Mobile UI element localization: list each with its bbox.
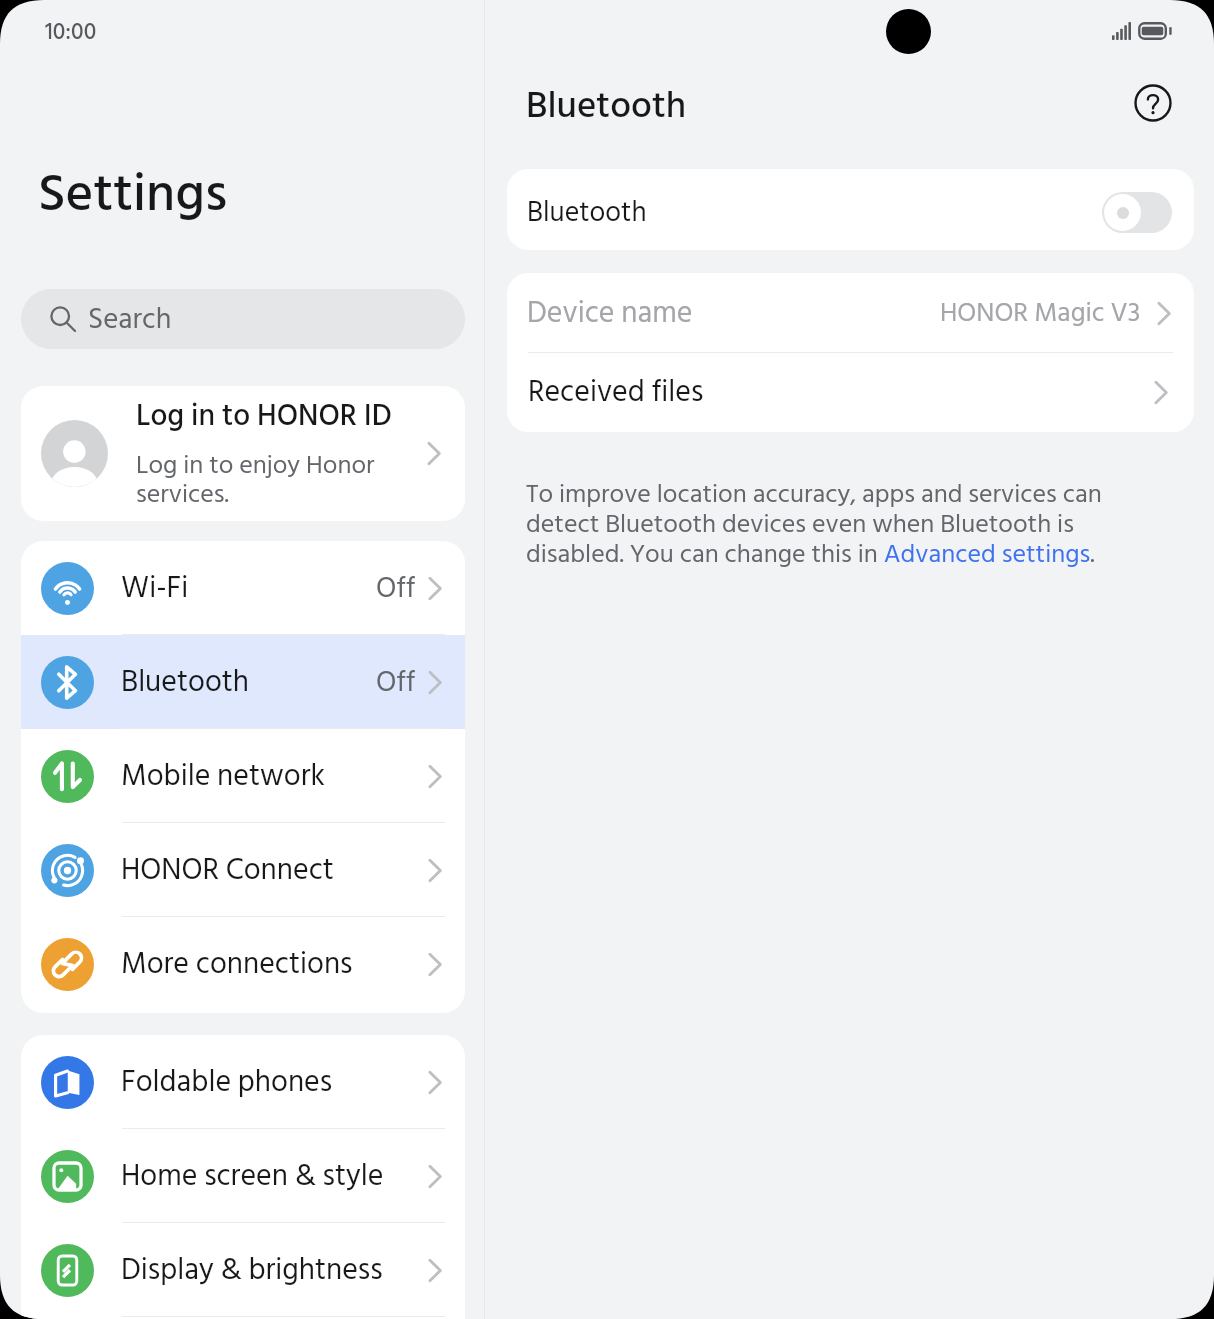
staticText: Display & brightness — [121, 1246, 423, 1295]
button[interactable]: HONOR Connect — [21, 823, 465, 917]
staticText: Wi-Fi — [121, 564, 376, 613]
staticText: To improve location accuracy, apps and s… — [526, 473, 1116, 575]
button[interactable]: Received files — [507, 353, 1194, 432]
staticText: Bluetooth — [526, 76, 687, 136]
button[interactable]: More connections — [21, 917, 465, 1011]
staticText: Bluetooth — [121, 658, 376, 707]
staticText: Off — [376, 565, 416, 612]
button[interactable]: Home screen & style — [21, 1129, 465, 1223]
staticText: Mobile network — [121, 752, 423, 801]
staticText: HONOR Connect — [121, 846, 423, 895]
button[interactable]: Help — [1125, 75, 1180, 130]
button[interactable]: Search — [21, 289, 465, 349]
button[interactable]: Display & brightness — [21, 1223, 465, 1317]
staticText: Log in to enjoy Honor services. — [136, 444, 416, 515]
button[interactable]: Device name — [507, 273, 1194, 353]
staticText: Device name — [527, 289, 940, 338]
staticText: Search — [88, 296, 172, 343]
staticText: 10:00 — [45, 13, 97, 50]
staticText: Foldable phones — [121, 1058, 423, 1107]
staticText: More connections — [121, 940, 423, 989]
staticText: Bluetooth — [527, 190, 1102, 235]
button[interactable]: Log in to HONOR ID — [21, 386, 465, 521]
staticText: Received files — [528, 368, 1149, 417]
staticText: HONOR Magic V3 — [940, 291, 1141, 335]
button[interactable]: Foldable phones — [21, 1035, 465, 1129]
staticText: Home screen & style — [121, 1152, 423, 1201]
button[interactable]: Bluetooth — [21, 635, 465, 729]
staticText: Log in to HONOR ID — [136, 392, 392, 441]
staticText: Off — [376, 659, 416, 706]
staticText: Settings — [38, 151, 228, 237]
button[interactable]: Wi-Fi — [21, 541, 465, 635]
button[interactable]: Mobile network — [21, 729, 465, 823]
button[interactable]: Bluetooth — [507, 169, 1194, 250]
